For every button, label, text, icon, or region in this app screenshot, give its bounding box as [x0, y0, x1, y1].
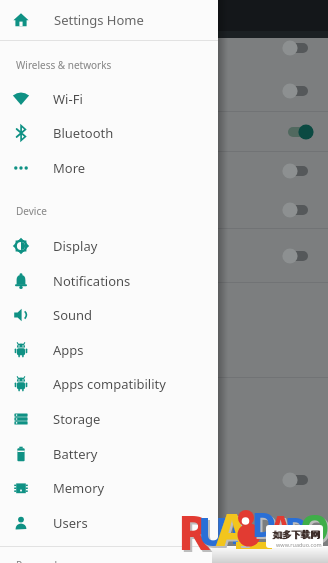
- staticText: A: [218, 500, 250, 561]
- staticText: Settings Home: [54, 11, 144, 29]
- button[interactable]: [282, 246, 314, 266]
- button[interactable]: Notifications: [0, 264, 218, 298]
- button[interactable]: [282, 470, 314, 490]
- staticText: Storage: [53, 410, 101, 428]
- staticText: Wireless & networks: [16, 58, 112, 72]
- staticText: Users: [53, 514, 88, 532]
- button[interactable]: [282, 38, 314, 58]
- button[interactable]: Bluetooth: [0, 116, 218, 150]
- button[interactable]: Storage: [0, 402, 218, 436]
- staticText: Battery: [53, 445, 98, 463]
- staticText: O: [302, 504, 328, 554]
- staticText: D: [252, 502, 277, 547]
- staticText: Device: [16, 204, 47, 218]
- staticText: O: [300, 502, 328, 552]
- staticText: A: [270, 506, 292, 547]
- staticText: 如多下载网: [273, 529, 321, 541]
- button[interactable]: More: [0, 151, 218, 185]
- button[interactable]: Sound: [0, 298, 218, 332]
- staticText: Apps: [53, 341, 84, 359]
- staticText: Sound: [53, 306, 93, 324]
- staticText: A: [272, 508, 294, 549]
- button[interactable]: Apps: [0, 333, 218, 367]
- staticText: D: [285, 507, 308, 549]
- button[interactable]: [282, 200, 314, 220]
- staticText: 如多下载网: [272, 529, 320, 541]
- button[interactable]: Settings Home: [0, 3, 218, 37]
- staticText: Display: [53, 237, 98, 255]
- staticText: A: [216, 498, 248, 559]
- button[interactable]: Users: [0, 506, 218, 540]
- button[interactable]: [282, 122, 314, 142]
- staticText: R: [180, 501, 212, 563]
- staticText: Memory: [53, 479, 105, 497]
- staticText: Apps compatibility: [53, 375, 166, 393]
- button[interactable]: [282, 161, 314, 181]
- staticText: Wi-Fi: [53, 90, 83, 108]
- staticText: R: [178, 499, 210, 563]
- staticText: D: [254, 504, 279, 549]
- staticText: Notifications: [53, 272, 131, 290]
- button[interactable]: Wi-Fi: [0, 82, 218, 116]
- staticText: www.ruaduo.com: [276, 541, 322, 548]
- button[interactable]: Apps compatibility: [0, 367, 218, 401]
- staticText: U: [198, 503, 229, 557]
- staticText: Bluetooth: [53, 124, 114, 142]
- staticText: More: [53, 159, 86, 177]
- button[interactable]: Display: [0, 229, 218, 263]
- button[interactable]: Battery: [0, 437, 218, 471]
- staticText: U: [200, 505, 231, 559]
- staticText: D: [287, 509, 310, 551]
- button[interactable]: [282, 81, 314, 101]
- staticText: Personal: [16, 558, 58, 563]
- button[interactable]: Memory: [0, 471, 218, 505]
